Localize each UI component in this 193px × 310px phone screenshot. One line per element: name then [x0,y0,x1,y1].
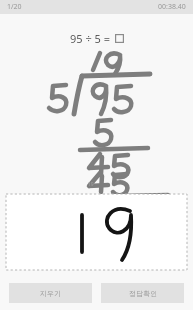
button[interactable]: 지우기 [9,283,92,303]
staticText: 지우기 [40,289,61,298]
button[interactable]: Answer writing area [6,194,187,270]
staticText: 19 [88,181,94,188]
staticText: 정답확인 [129,289,157,298]
staticText: 1/20 [7,2,22,12]
staticText: 95 ÷ 5 = [70,31,111,46]
button[interactable]: 정답확인 [101,283,184,303]
staticText: 00:38.40 [158,2,186,12]
